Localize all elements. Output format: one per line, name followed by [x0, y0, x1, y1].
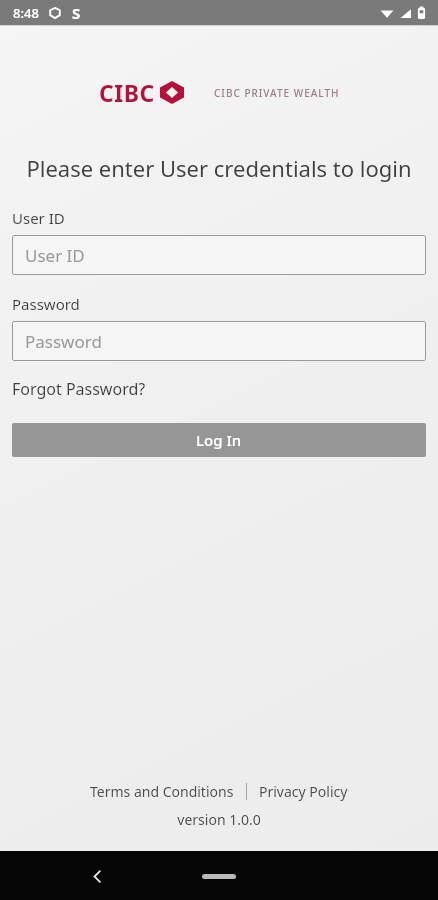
staticText: 8:48: [13, 4, 39, 22]
staticText: User ID: [25, 244, 85, 267]
button[interactable]: Home: [189, 861, 249, 891]
staticText: Please enter User credentials to login: [22, 153, 416, 183]
button[interactable]: Forgot Password?: [12, 378, 146, 400]
staticText: Password: [12, 294, 80, 314]
staticText: CIBC: [99, 77, 155, 108]
staticText: Log In: [196, 430, 242, 450]
button[interactable]: Back: [78, 857, 116, 895]
staticText: Password: [25, 330, 102, 353]
button[interactable]: Privacy Policy: [259, 782, 348, 801]
staticText: Terms and Conditions: [90, 782, 234, 801]
button[interactable]: Log In: [12, 423, 426, 457]
staticText: version 1.0.0: [0, 810, 438, 829]
staticText: Forgot Password?: [12, 378, 146, 400]
button[interactable]: Terms and Conditions: [90, 782, 234, 801]
staticText: S: [72, 3, 81, 23]
button[interactable]: Password: [12, 321, 426, 361]
staticText: Privacy Policy: [259, 782, 348, 801]
staticText: User ID: [12, 208, 65, 228]
staticText: CIBC PRIVATE WEALTH: [214, 86, 340, 100]
button[interactable]: User ID: [12, 235, 426, 275]
